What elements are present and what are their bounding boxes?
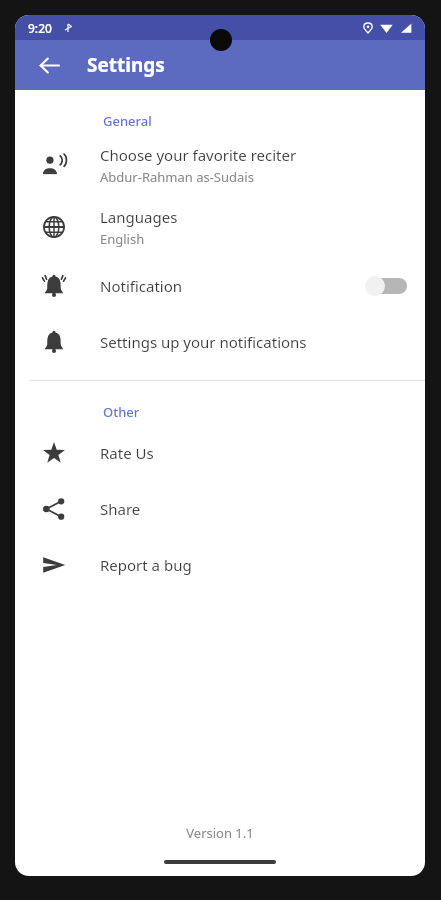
staticText: English xyxy=(100,230,145,248)
staticText: Abdur-Rahman as-Sudais xyxy=(100,168,254,186)
staticText: Settings xyxy=(87,52,165,78)
staticText: Notification xyxy=(100,276,183,296)
staticText: General xyxy=(103,112,152,130)
staticText: Report a bug xyxy=(100,555,192,575)
button[interactable]: Share xyxy=(15,481,425,537)
staticText: Choose your favorite reciter xyxy=(100,145,297,165)
staticText: Settings up your notifications xyxy=(100,332,307,352)
staticText: Version 1.1 xyxy=(15,824,425,842)
button[interactable]: Notification xyxy=(15,258,425,314)
button[interactable]: Report a bug xyxy=(15,537,425,593)
button[interactable]: Settings up your notifications xyxy=(15,314,425,370)
button[interactable]: Rate Us xyxy=(15,425,425,481)
staticText: Other xyxy=(103,403,140,421)
button[interactable]: Notification toggle xyxy=(361,273,407,299)
staticText: Share xyxy=(100,499,141,519)
staticText: 9:20 xyxy=(28,20,52,36)
staticText: Languages xyxy=(100,207,178,227)
button[interactable]: Back xyxy=(29,45,69,85)
button[interactable]: Choose your favorite reciter xyxy=(15,134,425,196)
staticText: Rate Us xyxy=(100,443,154,463)
button[interactable]: Languages xyxy=(15,196,425,258)
